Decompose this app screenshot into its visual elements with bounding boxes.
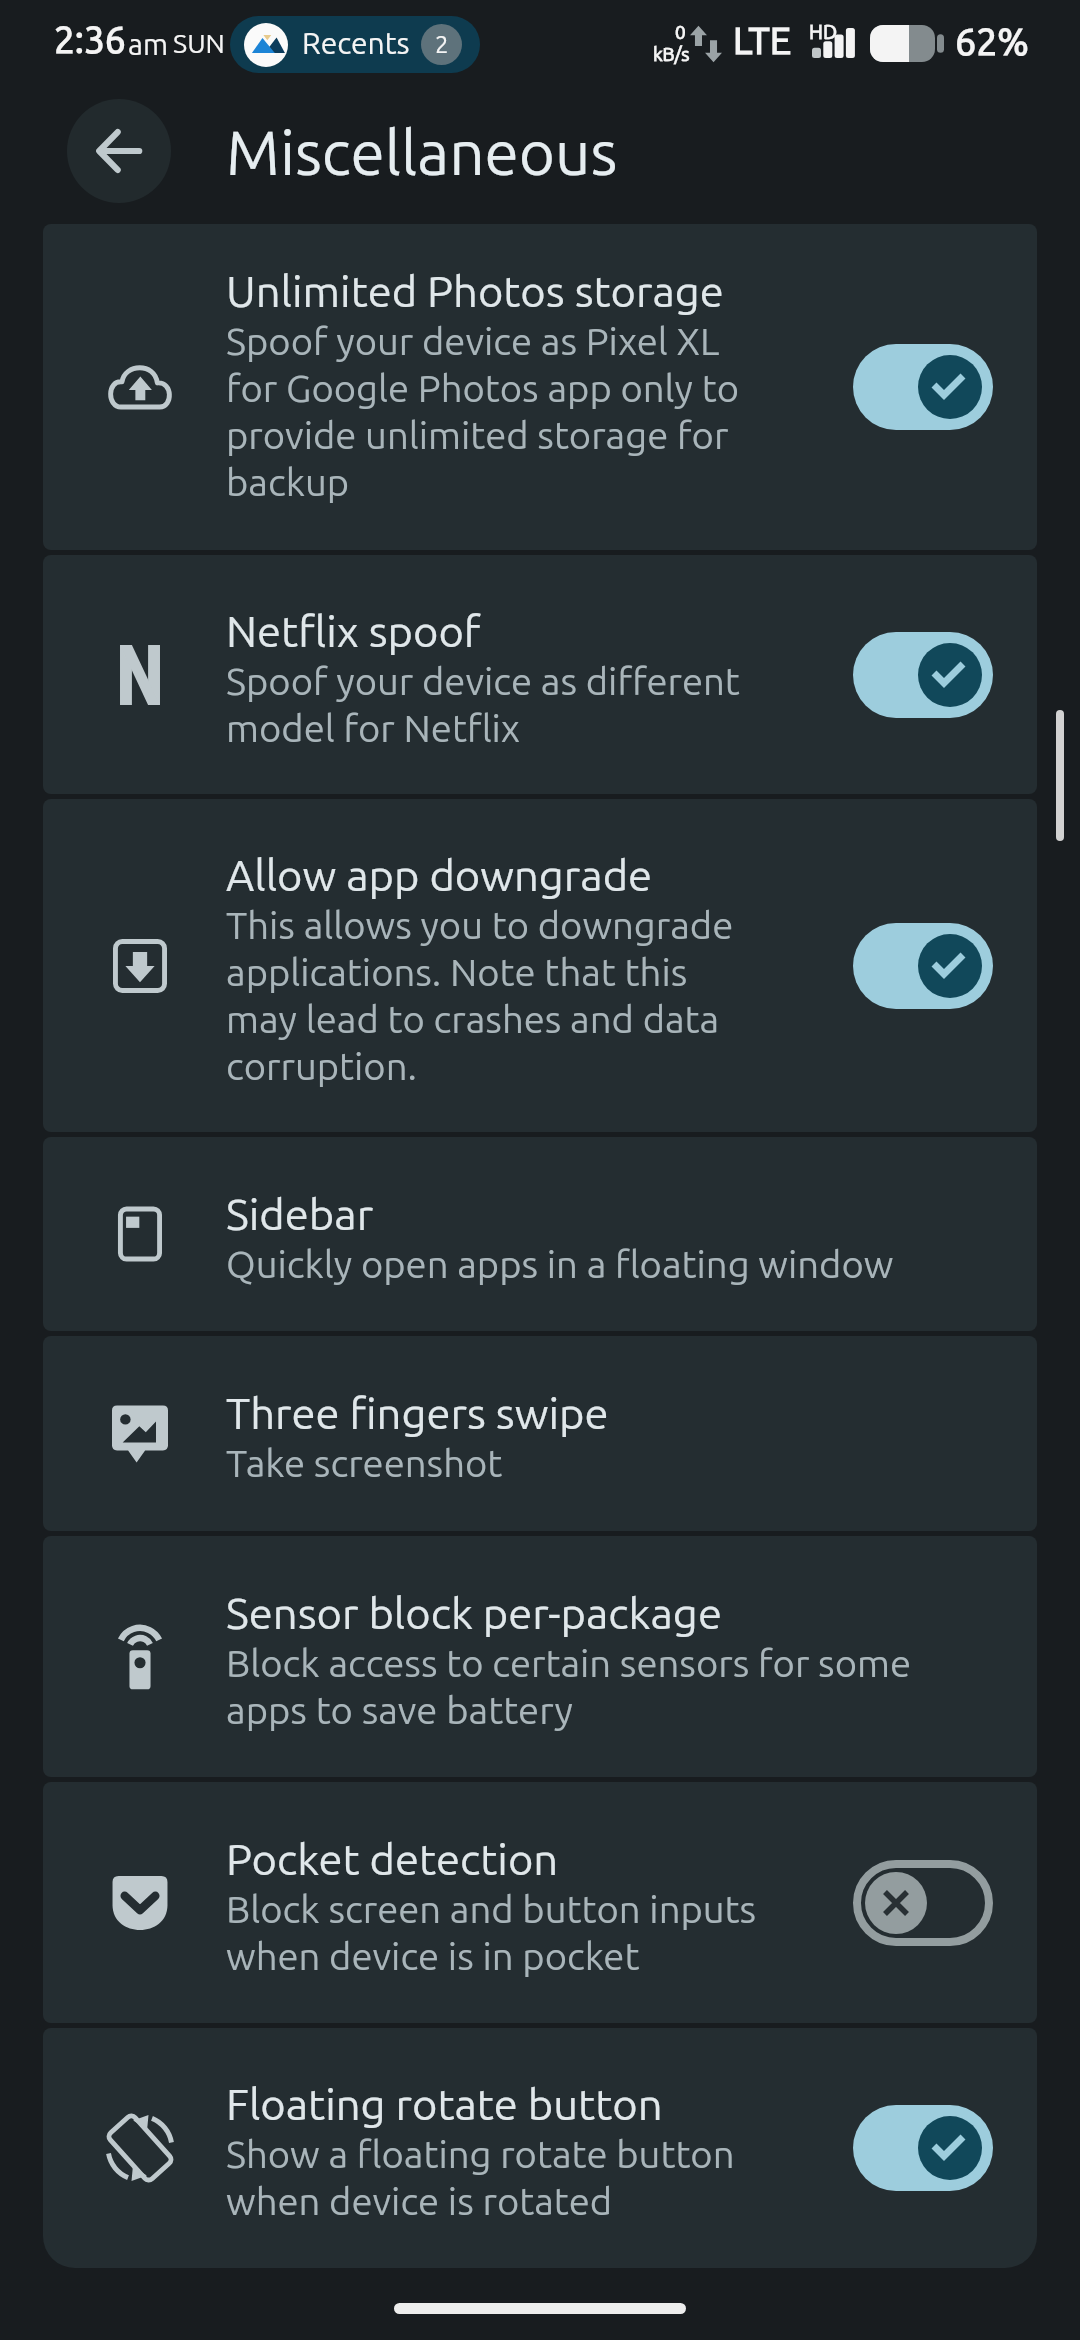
staticText: Miscellaneous xyxy=(226,117,618,187)
staticText: Unlimited Photos storage xyxy=(226,264,724,316)
staticText: Allow app downgrade xyxy=(226,848,653,900)
staticText: This allows you to downgrade application… xyxy=(226,900,758,1088)
staticText: Spoof your device as different model for… xyxy=(226,656,758,750)
button[interactable]: Toggle on xyxy=(853,923,993,1009)
button[interactable]: Toggle on xyxy=(853,632,993,718)
button[interactable]: Recents xyxy=(230,16,480,73)
staticText: Show a floating rotate button when devic… xyxy=(226,2129,758,2223)
button[interactable]: Toggle off xyxy=(853,1860,993,1946)
button[interactable]: Three fingers swipe xyxy=(43,1336,1037,1531)
staticText: Take screenshot xyxy=(226,1438,503,1485)
button[interactable]: Allow app downgrade xyxy=(43,799,1037,1132)
button[interactable]: Netflix spoof xyxy=(43,555,1037,794)
staticText: Netflix spoof xyxy=(226,604,481,656)
button[interactable]: Unlimited Photos storage xyxy=(43,224,1037,550)
staticText: am xyxy=(128,28,168,61)
staticText: Sidebar xyxy=(226,1187,374,1239)
staticText: 2:36 xyxy=(54,19,126,60)
staticText: 62% xyxy=(955,20,1029,62)
staticText: Block access to certain sensors for some… xyxy=(226,1638,946,1732)
button[interactable]: Sidebar xyxy=(43,1137,1037,1331)
staticText: 2 xyxy=(435,31,449,58)
staticText: Block screen and button inputs when devi… xyxy=(226,1884,758,1978)
staticText: SUN xyxy=(173,28,225,58)
staticText: Floating rotate button xyxy=(226,2077,663,2129)
staticText: Recents xyxy=(302,26,410,60)
button[interactable]: Sensor block per-package xyxy=(43,1536,1037,1777)
button[interactable]: Back xyxy=(67,99,171,203)
button[interactable]: Floating rotate button xyxy=(43,2028,1037,2268)
staticText: 0 xyxy=(675,21,686,42)
staticText: LTE xyxy=(733,19,792,62)
staticText: HD xyxy=(809,20,838,42)
staticText: Quickly open apps in a floating window xyxy=(226,1239,894,1286)
staticText: Three fingers swipe xyxy=(226,1386,609,1438)
staticText: kB/s xyxy=(653,43,690,64)
button[interactable]: Pocket detection xyxy=(43,1782,1037,2023)
button[interactable]: Toggle on xyxy=(853,2105,993,2191)
staticText: Spoof your device as Pixel XL for Google… xyxy=(226,316,758,504)
button[interactable]: Toggle on xyxy=(853,344,993,430)
staticText: Pocket detection xyxy=(226,1832,559,1884)
staticText: Sensor block per-package xyxy=(226,1586,722,1638)
